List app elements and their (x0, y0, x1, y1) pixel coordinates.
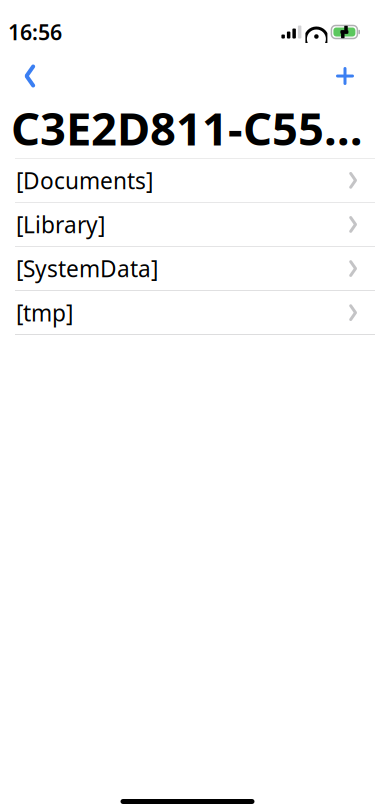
staticText: [Documents] (16, 165, 153, 195)
button[interactable]: Back (2, 54, 58, 98)
button[interactable]: [SystemData] (0, 247, 375, 290)
staticText: [Library] (16, 209, 105, 239)
button[interactable]: Add (317, 54, 373, 98)
staticText: [tmp] (16, 298, 73, 328)
staticText: [SystemData] (16, 253, 158, 284)
button[interactable]: [tmp] (0, 291, 375, 334)
button[interactable]: [Documents] (0, 159, 375, 202)
staticText: C3E2D811-C558-4… (11, 98, 367, 158)
staticText: 16:56 (8, 18, 62, 46)
button[interactable]: [Library] (0, 203, 375, 246)
